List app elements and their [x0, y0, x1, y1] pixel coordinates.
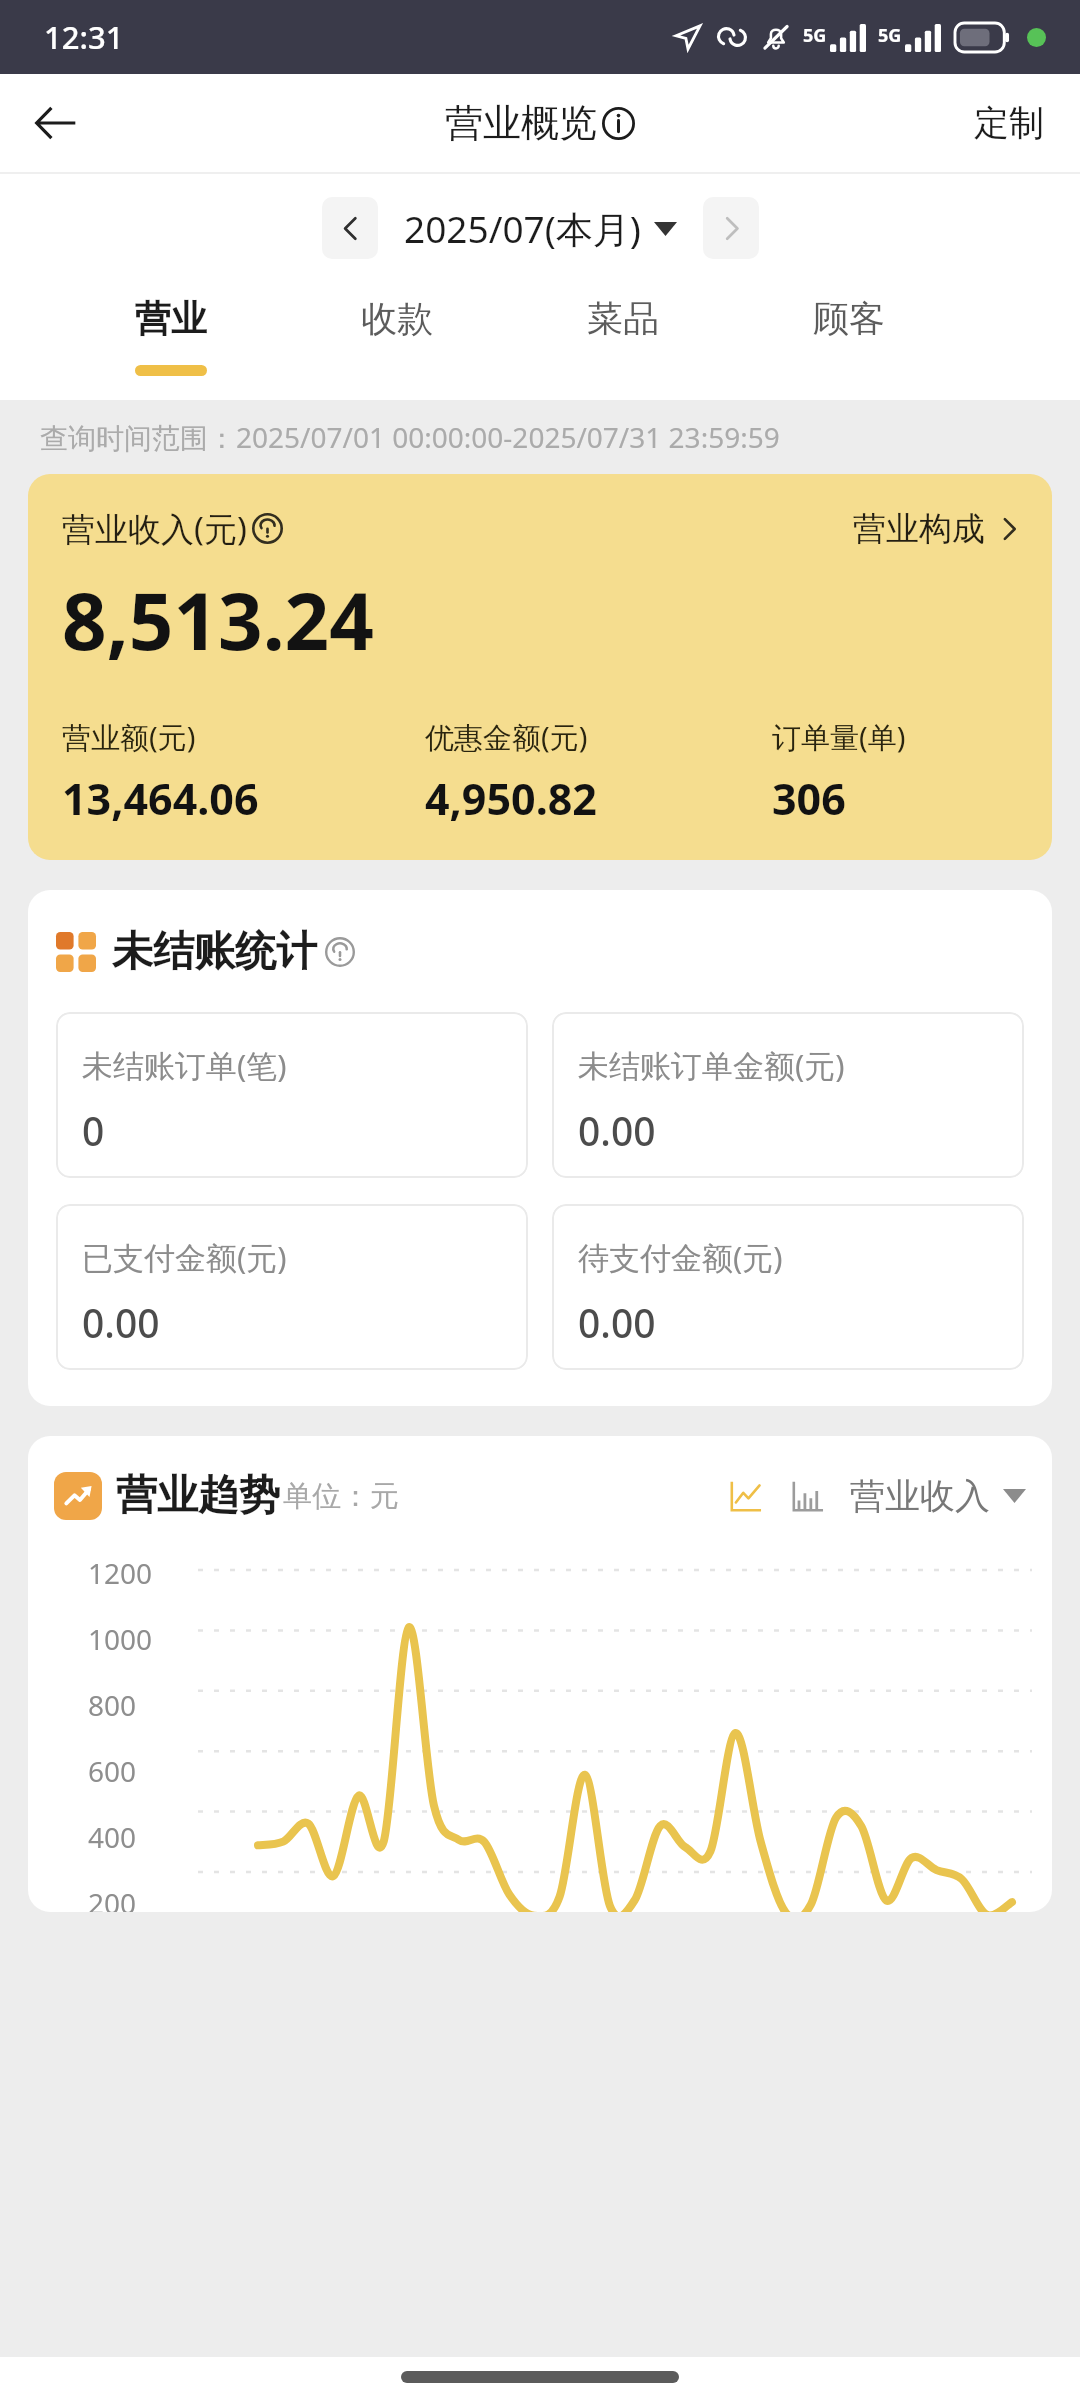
button[interactable]: 营业构成 [853, 508, 1022, 550]
staticText: 1200 [88, 1554, 153, 1592]
staticText: 营业额(元) [62, 717, 196, 757]
staticText: 营业 [135, 296, 207, 341]
staticText: 订单量(单) [772, 717, 906, 757]
staticText: 12:31 [44, 16, 124, 58]
staticText: 待支付金额(元) [578, 1236, 783, 1278]
staticText: 1000 [88, 1620, 153, 1658]
button[interactable]: 营业收入(元) [28, 474, 1052, 860]
button[interactable]: 已支付金额(元) [56, 1204, 528, 1370]
button[interactable]: 定制 [962, 89, 1056, 157]
button[interactable]: 2025/07(本月) [404, 203, 677, 254]
button[interactable]: 未结账订单(笔) [56, 1012, 528, 1178]
staticText: 5G [878, 23, 902, 48]
staticText: 收款 [361, 296, 433, 341]
staticText: 营业构成 [853, 508, 985, 550]
button[interactable]: 未结账订单金额(元) [552, 1012, 1024, 1178]
staticText: 8,513.24 [62, 567, 374, 673]
button[interactable]: 营业收入 [850, 1474, 1026, 1518]
staticText: 13,464.06 [62, 769, 259, 828]
staticText: 已支付金额(元) [82, 1236, 287, 1278]
button[interactable]: Previous period [322, 197, 378, 259]
button[interactable]: 菜品 [510, 282, 736, 400]
staticText: 营业收入 [850, 1474, 990, 1518]
button[interactable]: Bar chart [784, 1473, 830, 1519]
staticText: 定制 [974, 101, 1044, 145]
staticText: 306 [772, 769, 846, 828]
staticText: 200 [88, 1884, 137, 1912]
staticText: 未结账统计 [112, 926, 317, 978]
staticText: 顾客 [813, 296, 885, 341]
staticText: 营业趋势 [116, 1470, 280, 1522]
staticText: 查询时间范围：2025/07/01 00:00:00-2025/07/31 23… [40, 418, 780, 456]
staticText: 0 [82, 1104, 105, 1157]
button[interactable]: 营业 [58, 282, 284, 400]
staticText: 未结账订单金额(元) [578, 1044, 845, 1086]
staticText: 5G [803, 23, 827, 48]
button[interactable]: 营业概览 [445, 99, 635, 147]
button[interactable]: 收款 [284, 282, 510, 400]
button[interactable]: 顾客 [736, 282, 962, 400]
staticText: 4,950.82 [425, 769, 597, 828]
staticText: 800 [88, 1686, 137, 1724]
staticText: 未结账订单(笔) [82, 1044, 287, 1086]
staticText: 2025/07(本月) [404, 203, 641, 254]
staticText: 0.00 [578, 1104, 656, 1157]
button[interactable]: Next period [703, 197, 759, 259]
staticText: 菜品 [587, 296, 659, 341]
staticText: 0.00 [578, 1296, 656, 1349]
staticText: 0.00 [82, 1296, 160, 1349]
staticText: 600 [88, 1752, 137, 1790]
button[interactable]: Back [22, 89, 90, 157]
staticText: 单位：元 [283, 1478, 399, 1515]
button[interactable]: 待支付金额(元) [552, 1204, 1024, 1370]
staticText: 400 [88, 1818, 137, 1856]
staticText: 优惠金额(元) [425, 717, 588, 757]
staticText: 营业收入(元) [62, 506, 247, 551]
staticText: 营业概览 [445, 99, 597, 147]
button[interactable]: Line chart [722, 1473, 768, 1519]
